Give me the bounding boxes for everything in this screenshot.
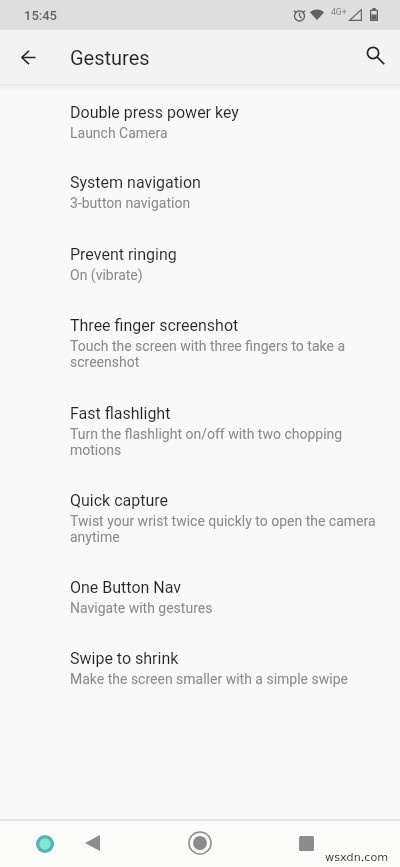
button[interactable]: Double press power key: [0, 91, 400, 162]
button[interactable]: System navigation: [0, 161, 400, 232]
button[interactable]: Assistant: [29, 828, 61, 860]
staticText: Make the screen smaller with a simple sw…: [70, 671, 348, 687]
button[interactable]: Swipe to shrink: [0, 637, 400, 708]
button[interactable]: One Button Nav: [0, 566, 400, 637]
staticText: On (vibrate): [70, 267, 143, 283]
staticText: Gestures: [70, 46, 150, 69]
button[interactable]: Home: [184, 827, 216, 859]
staticText: Launch Camera: [70, 125, 168, 141]
button[interactable]: Back: [8, 37, 48, 77]
staticText: Navigate with gestures: [70, 600, 213, 616]
staticText: Fast flashlight: [70, 404, 171, 423]
staticText: Twist your wrist twice quickly to open t…: [70, 513, 378, 545]
staticText: wsxdn.com: [325, 851, 389, 864]
button[interactable]: Search: [356, 37, 396, 77]
staticText: One Button Nav: [70, 578, 182, 597]
staticText: Swipe to shrink: [70, 649, 179, 668]
staticText: Quick capture: [70, 491, 169, 510]
button[interactable]: Prevent ringing: [0, 233, 400, 304]
button[interactable]: Quick capture: [0, 479, 400, 566]
button[interactable]: Fast flashlight: [0, 392, 400, 479]
staticText: 3-button navigation: [70, 195, 191, 211]
staticText: 4G+: [331, 7, 347, 17]
staticText: Touch the screen with three fingers to t…: [70, 338, 378, 370]
button[interactable]: Back: [76, 827, 108, 859]
button[interactable]: Three finger screenshot: [0, 304, 400, 392]
staticText: Prevent ringing: [70, 245, 177, 264]
staticText: System navigation: [70, 173, 201, 192]
staticText: Double press power key: [70, 103, 239, 122]
staticText: 15:45: [24, 8, 58, 23]
staticText: Turn the flashlight on/off with two chop…: [70, 426, 378, 458]
staticText: Three finger screenshot: [70, 316, 239, 335]
button[interactable]: Recent apps: [290, 827, 322, 859]
